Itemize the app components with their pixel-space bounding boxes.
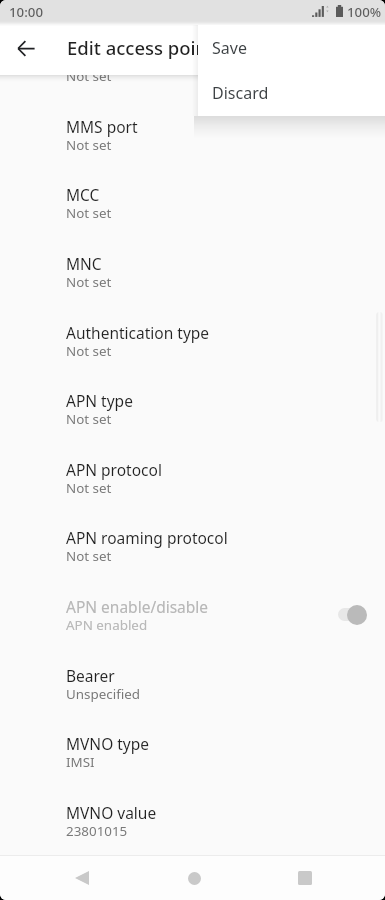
button[interactable]: MMS proxy — [0, 47, 385, 116]
staticText: IMSI — [66, 753, 95, 771]
staticText: MMS port — [66, 116, 138, 137]
button[interactable]: APN enable/disable — [0, 596, 385, 665]
staticText: MVNO type — [66, 733, 150, 754]
staticText: Not set — [66, 547, 112, 565]
staticText: MVNO value — [66, 802, 157, 823]
button[interactable]: MVNO value — [0, 802, 385, 871]
staticText: Not set — [66, 410, 112, 428]
staticText: Authentication type — [66, 322, 210, 343]
staticText: Not set — [66, 67, 112, 85]
button[interactable]: MCC — [0, 184, 385, 253]
button[interactable]: Home — [166, 856, 223, 900]
staticText: 10:00 — [9, 3, 44, 21]
button[interactable]: APN enable/disable toggle — [331, 596, 377, 632]
staticText: Not set — [66, 479, 112, 497]
staticText: Unspecified — [66, 685, 140, 703]
button[interactable]: Recent apps — [276, 856, 333, 900]
staticText: MCC — [66, 184, 100, 205]
button[interactable]: Back — [8, 30, 44, 66]
button[interactable]: MVNO type — [0, 733, 385, 802]
button[interactable]: Authentication type — [0, 322, 385, 391]
staticText: Not set — [66, 204, 112, 222]
staticText: APN type — [66, 390, 133, 411]
staticText: APN roaming protocol — [66, 527, 228, 548]
button[interactable]: MMS port — [0, 116, 385, 185]
staticText: MMS proxy — [66, 47, 148, 68]
button[interactable]: Discard — [198, 72, 385, 112]
staticText: 100% — [347, 3, 382, 21]
staticText: 23801015 — [66, 822, 128, 840]
staticText: Discard — [212, 82, 269, 104]
button[interactable]: Back — [53, 856, 110, 900]
staticText: APN enabled — [66, 616, 148, 634]
button[interactable]: MNC — [0, 253, 385, 322]
button[interactable]: APN type — [0, 390, 385, 459]
staticText: Edit access point — [67, 35, 215, 60]
button[interactable]: APN roaming protocol — [0, 527, 385, 596]
staticText: Save — [212, 37, 247, 59]
staticText: Not set — [66, 136, 112, 154]
button[interactable]: Save — [198, 27, 385, 67]
button[interactable]: APN protocol — [0, 459, 385, 528]
staticText: Bearer — [66, 665, 115, 686]
staticText: APN protocol — [66, 459, 162, 480]
staticText: APN enable/disable — [66, 596, 209, 617]
staticText: MNC — [66, 253, 102, 274]
button[interactable]: Bearer — [0, 665, 385, 734]
staticText: Not set — [66, 342, 112, 360]
staticText: Not set — [66, 273, 112, 291]
